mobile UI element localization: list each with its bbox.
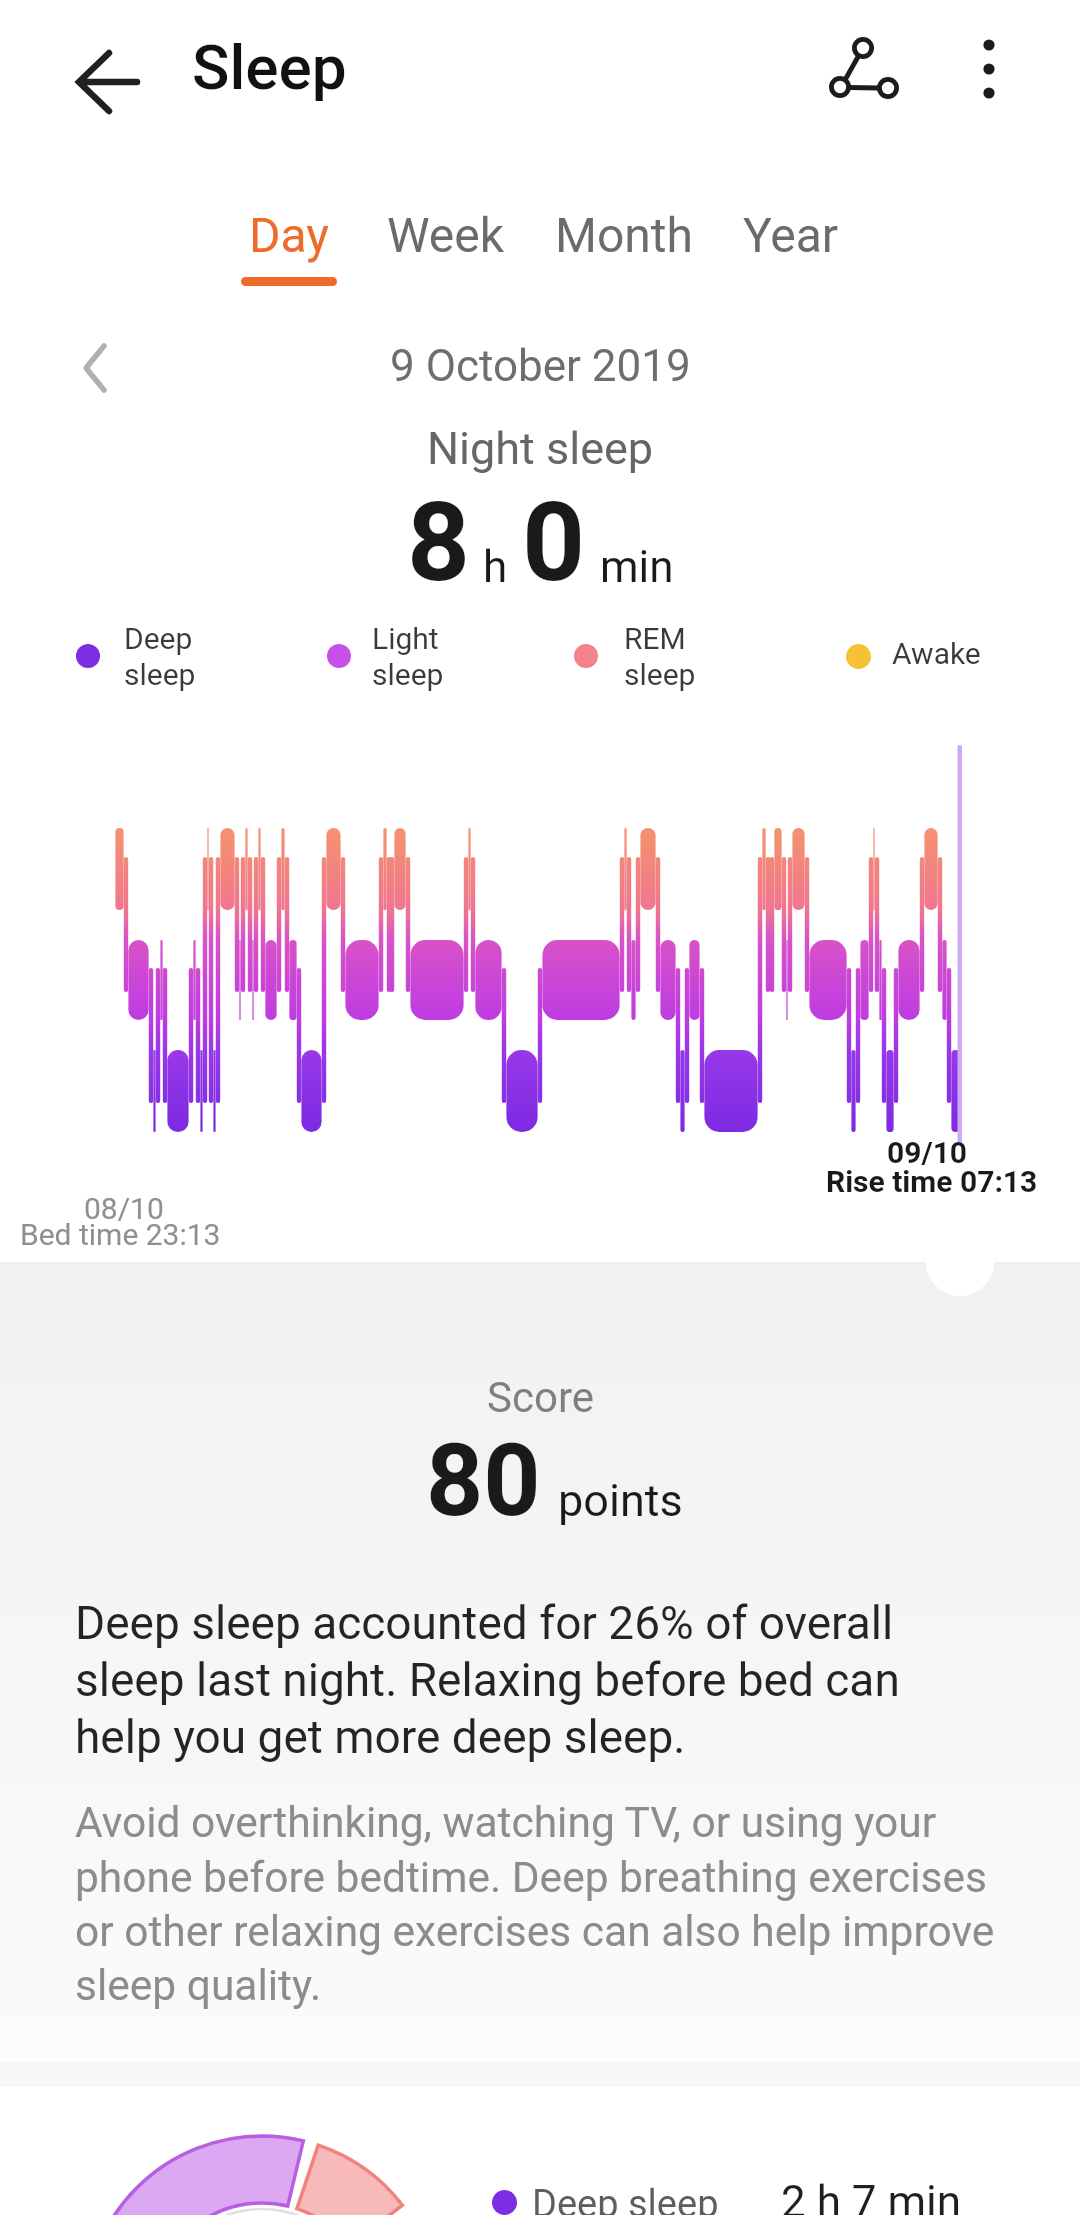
- button[interactable]: Day: [241, 207, 337, 286]
- staticText: Avoid overthinking, watching TV, or usin…: [75, 1798, 995, 2010]
- staticText: 80: [426, 1422, 541, 1539]
- staticText: REM sleep: [624, 621, 696, 692]
- staticText: min: [600, 541, 674, 593]
- staticText: 8: [407, 478, 471, 607]
- staticText: Deep sleep accounted for 26% of overall …: [75, 1596, 900, 1764]
- staticText: 0: [522, 478, 586, 607]
- button[interactable]: [56, 40, 160, 124]
- staticText: Score: [487, 1373, 594, 1422]
- staticText: 08/10: [84, 1191, 164, 1226]
- staticText: Month: [555, 207, 693, 263]
- staticText: Deep sleep: [532, 2182, 719, 2215]
- staticText: Awake: [892, 636, 981, 671]
- staticText: Bed time 23:13: [20, 1217, 221, 1252]
- button[interactable]: [813, 22, 917, 118]
- button[interactable]: Year: [743, 207, 839, 263]
- staticText: h: [483, 541, 508, 593]
- staticText: Deep sleep: [124, 621, 196, 692]
- staticText: 2 h 7 min: [781, 2176, 962, 2215]
- staticText: Week: [387, 207, 505, 263]
- staticText: Rise time 07:13: [826, 1164, 1038, 1199]
- staticText: Light sleep: [372, 621, 444, 692]
- staticText: 9 October 2019: [390, 340, 691, 392]
- staticText: 09/10: [887, 1135, 968, 1170]
- staticText: Year: [743, 207, 839, 263]
- staticText: Day: [249, 207, 329, 263]
- button[interactable]: Month: [555, 207, 693, 263]
- staticText: Night sleep: [427, 422, 654, 475]
- button[interactable]: [944, 25, 1034, 115]
- button[interactable]: Deep sleep: [492, 2182, 719, 2215]
- staticText: Sleep: [192, 31, 347, 104]
- button[interactable]: Week: [387, 207, 505, 263]
- staticText: points: [558, 1474, 683, 1527]
- button[interactable]: [58, 328, 132, 408]
